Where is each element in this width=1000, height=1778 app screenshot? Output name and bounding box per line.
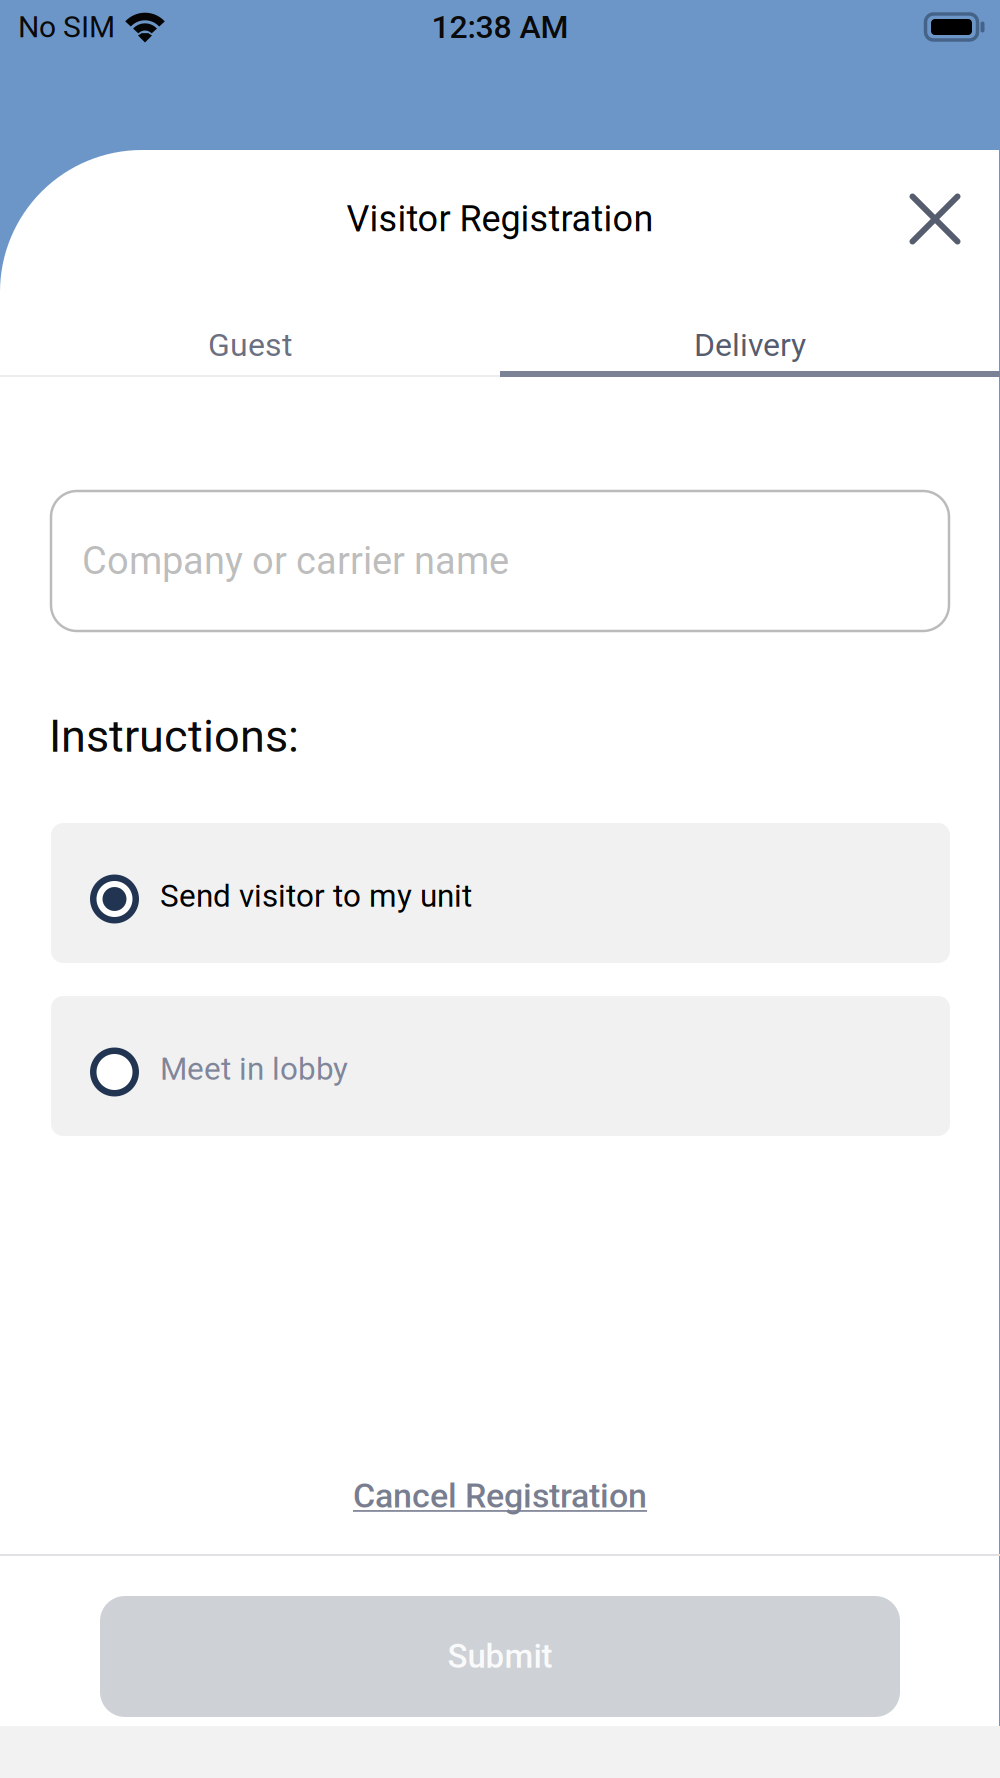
staticText: Guest <box>208 326 292 364</box>
staticText: 12:38 AM <box>431 8 568 46</box>
button[interactable]: Submit <box>100 1596 900 1717</box>
staticText: Instructions: <box>49 710 299 763</box>
button[interactable]: Send visitor to my unit <box>51 823 950 963</box>
staticText: Cancel Registration <box>353 1476 647 1516</box>
staticText: Visitor Registration <box>346 198 653 240</box>
button[interactable]: Guest <box>0 291 500 377</box>
staticText: No SIM <box>18 9 115 45</box>
staticText: Send visitor to my unit <box>160 878 472 914</box>
button[interactable]: Delivery <box>500 291 1000 377</box>
staticText: Delivery <box>694 326 806 364</box>
button[interactable]: Company or carrier name <box>51 491 949 631</box>
staticText: Meet in lobby <box>160 1051 348 1087</box>
button[interactable]: Meet in lobby <box>51 996 950 1136</box>
button[interactable]: Cancel Registration <box>300 1461 700 1531</box>
staticText: Company or carrier name <box>82 539 509 583</box>
staticText: Submit <box>447 1637 552 1676</box>
button[interactable]: Close <box>880 164 990 274</box>
